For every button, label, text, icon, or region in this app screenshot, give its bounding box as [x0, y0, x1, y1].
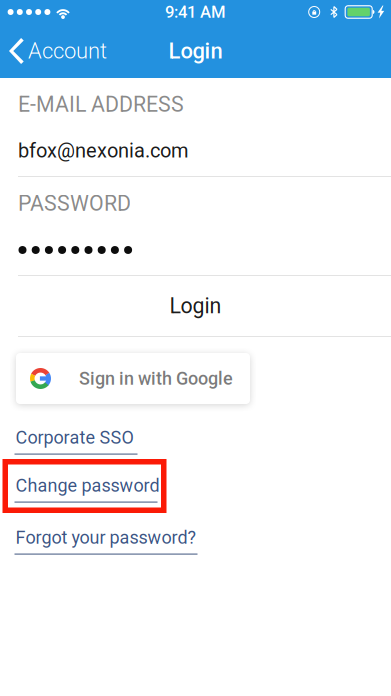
staticText: 9:41 AM — [165, 2, 226, 22]
staticText: Login — [168, 38, 222, 64]
staticText: bfox@nexonia.com — [18, 139, 189, 162]
staticText: Login — [169, 293, 221, 318]
staticText: Account — [28, 38, 107, 64]
button[interactable]: Corporate SSO — [0, 427, 163, 457]
button[interactable]: Account — [0, 24, 117, 78]
button[interactable]: Login — [0, 276, 391, 336]
staticText: PASSWORD — [18, 191, 131, 216]
staticText: E-MAIL ADDRESS — [18, 92, 184, 117]
button[interactable]: Forgot your password? — [0, 527, 223, 557]
staticText: Change password — [15, 475, 159, 496]
button[interactable]: Sign in with Google — [16, 353, 250, 404]
staticText: Forgot your password? — [15, 527, 196, 548]
button[interactable]: Change password — [0, 475, 183, 505]
staticText: Sign in with Google — [79, 368, 233, 389]
staticText: Corporate SSO — [15, 427, 133, 448]
